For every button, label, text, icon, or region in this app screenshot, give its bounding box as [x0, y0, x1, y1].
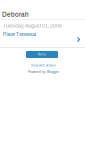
button[interactable]: View web version: [31, 64, 56, 67]
staticText: Blogger: [47, 70, 59, 74]
button[interactable]: Next post: [77, 37, 79, 41]
button[interactable]: Home: [26, 51, 58, 58]
staticText: Placer Transexual: [3, 32, 36, 37]
staticText: Home: [37, 53, 46, 56]
button[interactable]: Blogger: [47, 70, 59, 74]
staticText: View web version: [31, 64, 56, 67]
staticText: Deborah: [2, 11, 29, 18]
staticText: Tuesday, August 01, 2006: [3, 23, 62, 29]
staticText: Powered by: [28, 70, 47, 74]
staticText: .: [59, 70, 60, 74]
button[interactable]: Placer Transexual: [3, 32, 36, 37]
